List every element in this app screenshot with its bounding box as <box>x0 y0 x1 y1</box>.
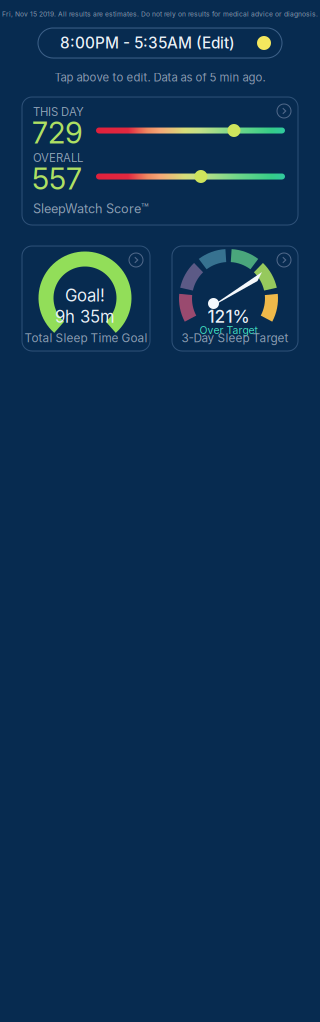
button[interactable]: Goal! <box>22 246 150 351</box>
staticText: 9h 35m <box>55 306 115 327</box>
staticText: 729 <box>32 115 83 150</box>
staticText: 557 <box>32 161 82 196</box>
staticText: Fri, Nov 15 2019. All results are estima… <box>2 10 318 18</box>
staticText: SleepWatch Score™ <box>33 201 149 216</box>
staticText: Tap above to edit. Data as of 5 min ago. <box>54 71 265 84</box>
staticText: 121% <box>207 306 249 327</box>
button[interactable]: THIS DAY <box>22 97 298 225</box>
staticText: Goal! <box>65 285 105 305</box>
staticText: 8:00PM - 5:35AM (Edit) <box>60 34 235 52</box>
staticText: OVERALL <box>33 151 83 165</box>
staticText: THIS DAY <box>33 105 84 119</box>
button[interactable]: 121% <box>172 246 298 351</box>
staticText: Over Target <box>199 324 257 337</box>
staticText: Total Sleep Time Goal <box>24 331 147 345</box>
staticText: 3-Day Sleep Target <box>181 331 288 345</box>
button[interactable]: 8:00PM - 5:35AM (Edit) <box>38 28 282 58</box>
